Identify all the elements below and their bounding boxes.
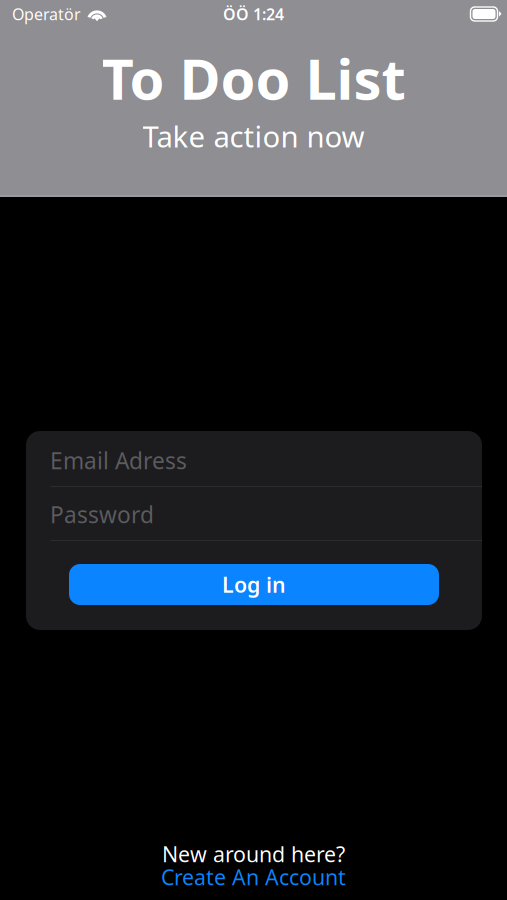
button[interactable]: Create An Account <box>161 865 346 889</box>
button[interactable]: Log in <box>69 564 439 605</box>
staticText: New around here? <box>162 840 345 868</box>
button[interactable]: Password <box>26 487 482 540</box>
staticText: Take action now <box>142 116 364 155</box>
button[interactable]: Email Adress <box>26 431 482 486</box>
staticText: Log in <box>222 570 286 599</box>
staticText: To Doo List <box>101 41 405 115</box>
staticText: Create An Account <box>161 863 346 891</box>
staticText: Operatör <box>12 3 81 25</box>
staticText: ÖÖ 1:24 <box>223 3 284 25</box>
staticText: Password <box>50 499 154 529</box>
staticText: Email Adress <box>50 445 187 475</box>
